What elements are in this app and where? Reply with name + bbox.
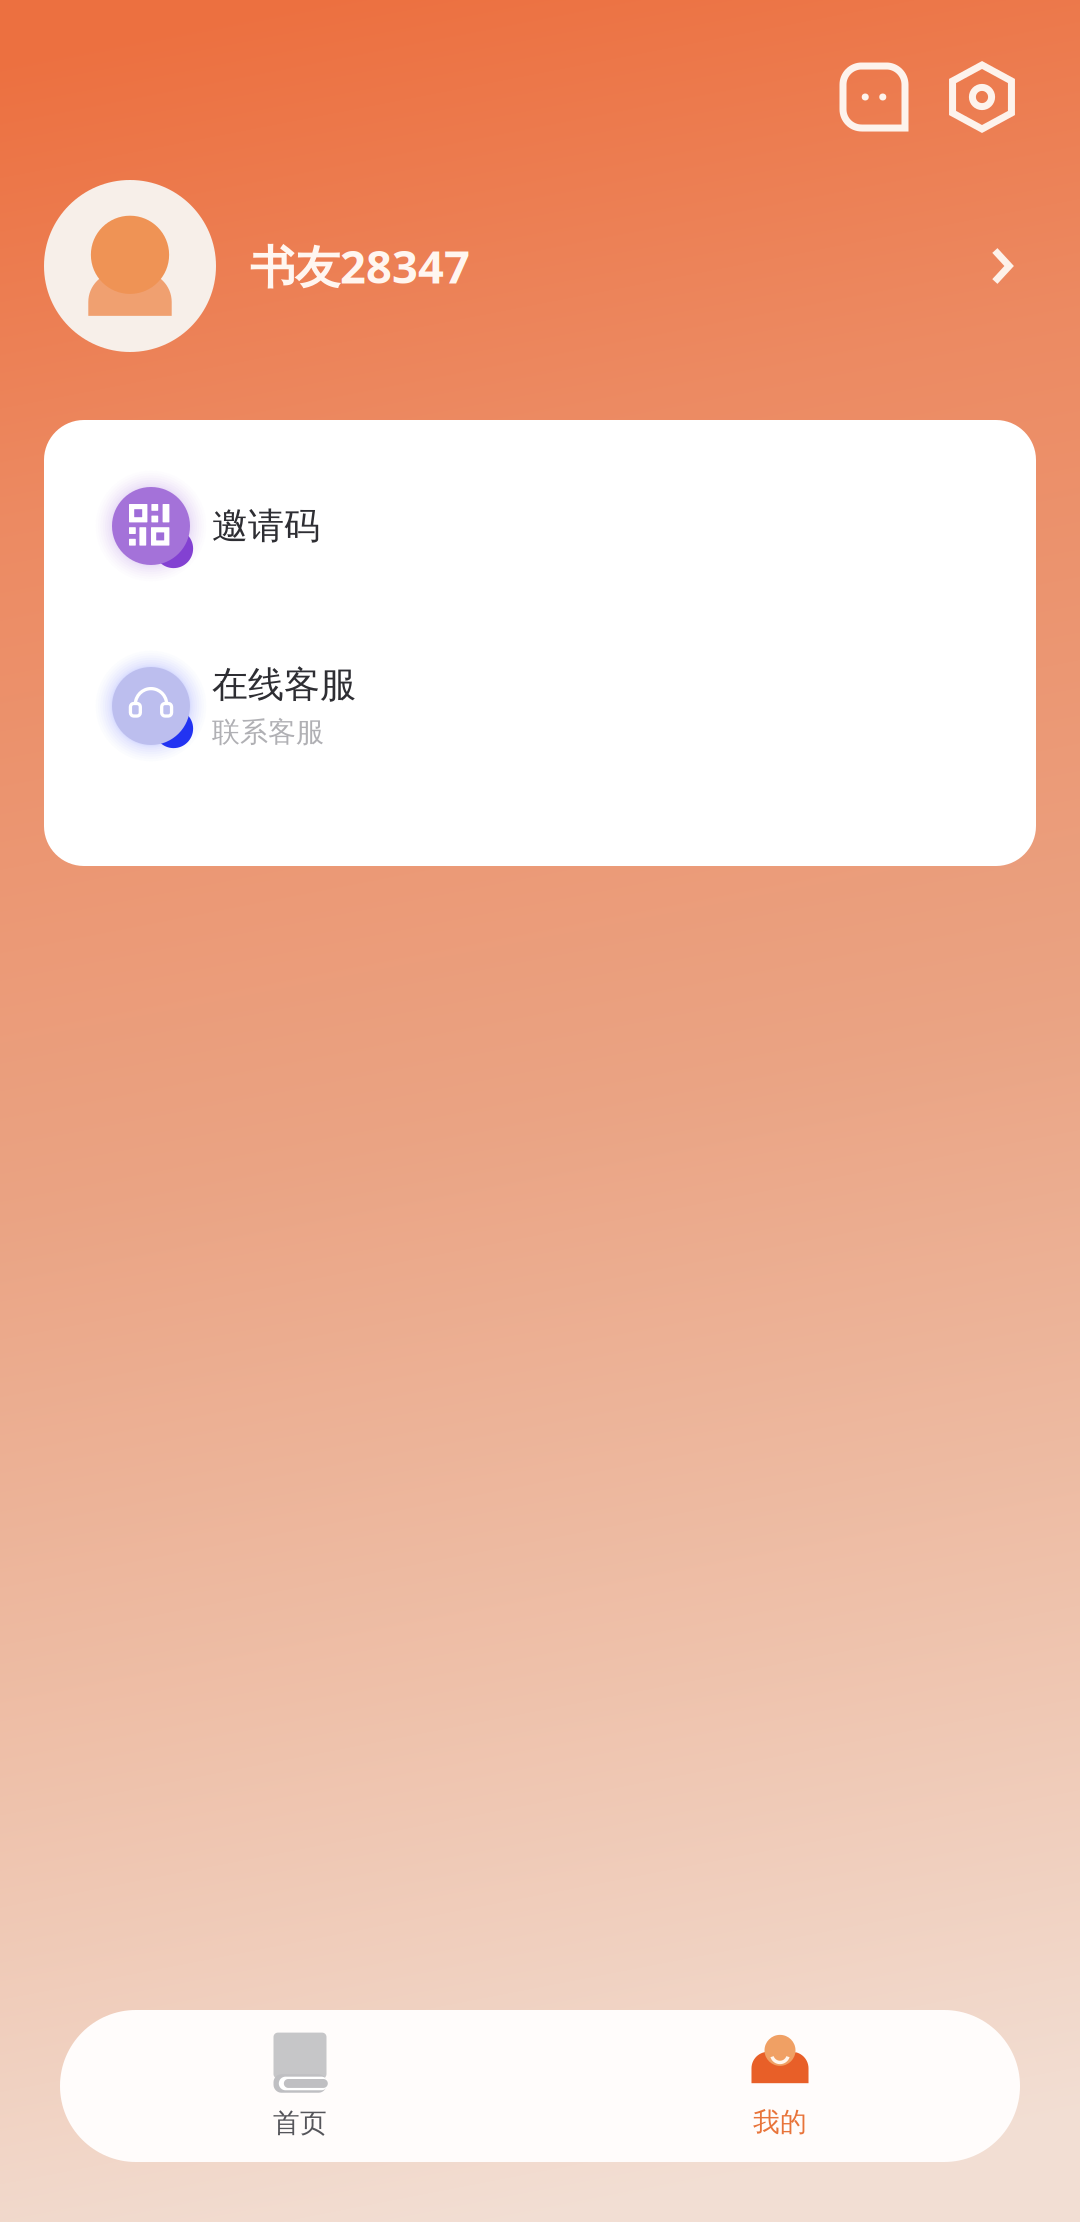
button[interactable]: 我的	[540, 2034, 1020, 2138]
staticText: 首页	[273, 2107, 327, 2139]
staticText: 邀请码	[212, 504, 320, 548]
button[interactable]: 首页	[60, 2033, 540, 2139]
button[interactable]: 在线客服	[44, 652, 1036, 760]
button[interactable]: Settings	[934, 49, 1030, 145]
button[interactable]: 邀请码	[44, 472, 1036, 580]
staticText: 我的	[753, 2106, 807, 2138]
staticText: 书友28347	[250, 236, 470, 296]
staticText: 在线客服	[212, 663, 356, 707]
button[interactable]: Messages	[814, 49, 934, 145]
button[interactable]: 书友28347	[0, 172, 1080, 360]
staticText: 联系客服	[212, 715, 324, 749]
